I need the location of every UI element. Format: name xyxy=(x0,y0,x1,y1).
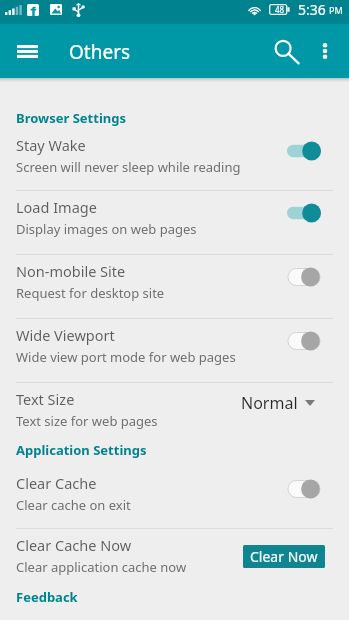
staticText: Text size for web pages xyxy=(16,412,158,430)
staticText: 5:36 xyxy=(298,0,326,19)
staticText: Clear Cache Now xyxy=(16,535,132,555)
staticText: Display images on web pages xyxy=(16,220,197,238)
staticText: Normal xyxy=(241,392,298,414)
staticText: PM xyxy=(329,4,343,16)
button[interactable]: Load Image xyxy=(0,191,349,254)
button[interactable]: Text Size xyxy=(0,383,349,430)
button[interactable]: Clear Now xyxy=(243,545,325,568)
button[interactable]: Search xyxy=(266,24,308,78)
staticText: Request for desktop site xyxy=(16,284,165,302)
staticText: Browser Settings xyxy=(16,109,126,127)
button[interactable]: Clear Cache xyxy=(0,467,349,528)
staticText: Clear application cache now xyxy=(16,558,187,576)
button[interactable]: Stay Wake xyxy=(0,129,349,190)
staticText: Application Settings xyxy=(16,441,147,459)
staticText: Text Size xyxy=(16,389,75,409)
staticText: Wide view port mode for web pages xyxy=(16,348,236,366)
staticText: Clear Cache xyxy=(16,473,97,493)
button[interactable]: Navigation menu xyxy=(6,24,48,78)
staticText: Screen will never sleep while reading xyxy=(16,158,241,176)
staticText: Others xyxy=(69,39,131,65)
button[interactable]: Wide Viewport xyxy=(0,319,349,382)
staticText: Non-mobile Site xyxy=(16,261,126,281)
staticText: Feedback xyxy=(16,588,78,606)
button[interactable]: More options xyxy=(308,24,342,78)
staticText: Clear Now xyxy=(250,547,318,566)
button[interactable]: Non-mobile Site xyxy=(0,255,349,318)
staticText: Stay Wake xyxy=(16,135,86,155)
staticText: Clear cache on exit xyxy=(16,496,131,514)
staticText: 48 xyxy=(275,4,285,15)
staticText: Load Image xyxy=(16,197,97,217)
staticText: Wide Viewport xyxy=(16,325,115,345)
